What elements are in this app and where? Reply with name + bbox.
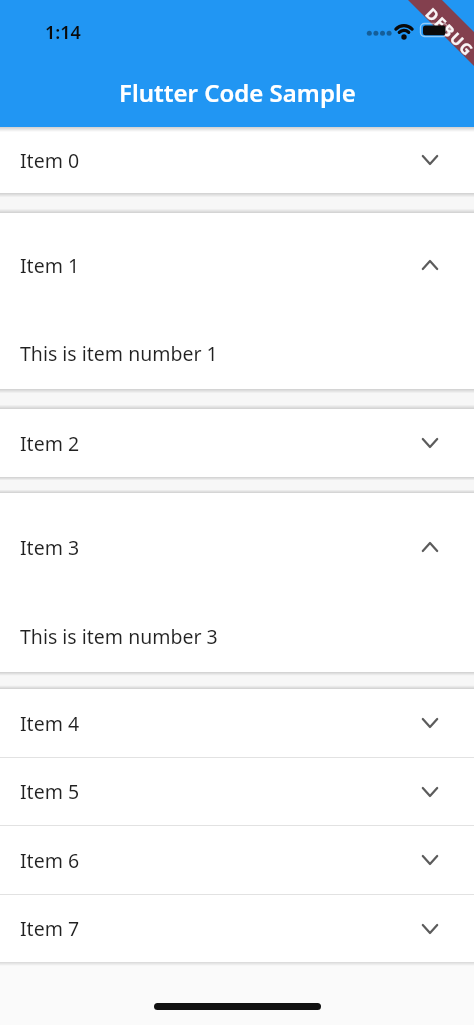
staticText: Flutter Code Sample: [119, 76, 356, 109]
staticText: This is item number 1: [20, 340, 218, 367]
staticText: Item 6: [20, 847, 80, 874]
staticText: Item 1: [20, 252, 80, 279]
staticText: This is item number 3: [20, 623, 218, 650]
staticText: Item 0: [20, 147, 80, 174]
staticText: 1:14: [45, 20, 81, 42]
staticText: Item 4: [20, 710, 80, 737]
staticText: DEBUG: [421, 3, 474, 61]
staticText: Item 7: [20, 915, 80, 942]
staticText: Item 3: [20, 534, 80, 561]
staticText: Item 2: [20, 430, 80, 457]
staticText: Item 5: [20, 778, 80, 805]
